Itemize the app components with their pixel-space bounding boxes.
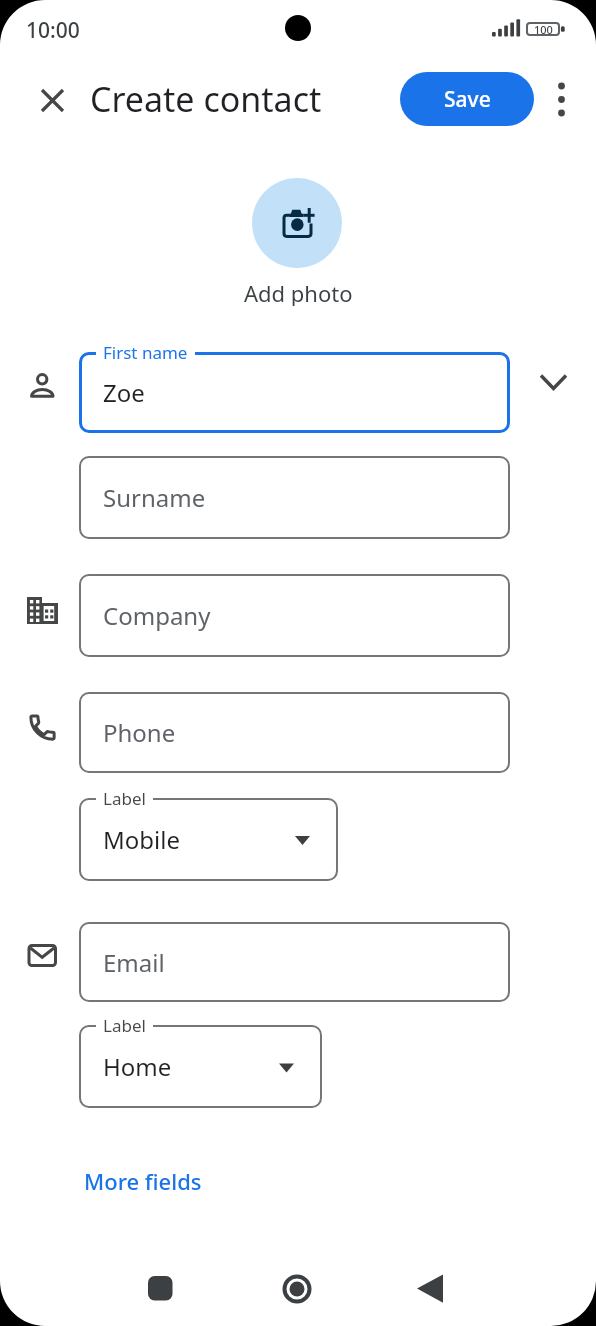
button[interactable]: Save [400, 72, 534, 126]
button[interactable]: Home [79, 1025, 322, 1108]
staticText: Add photo [244, 278, 353, 306]
staticText: 10:00 [26, 16, 80, 44]
button[interactable]: More fields [70, 1160, 216, 1202]
button[interactable]: Surname [79, 456, 510, 539]
staticText: 100 [534, 22, 553, 36]
button[interactable]: Phone [79, 692, 510, 773]
button[interactable] [273, 1264, 321, 1312]
button[interactable]: Zoe [79, 352, 510, 433]
staticText: First name [103, 341, 188, 363]
staticText: Mobile [103, 823, 180, 856]
staticText: Save [444, 85, 491, 114]
button[interactable] [136, 1264, 184, 1312]
button[interactable] [541, 75, 581, 123]
staticText: Surname [103, 481, 206, 514]
staticText: Create contact [90, 76, 322, 116]
button[interactable] [252, 178, 342, 268]
staticText: Company [103, 599, 211, 632]
staticText: Phone [103, 716, 176, 749]
button[interactable] [28, 76, 76, 124]
staticText: Email [103, 946, 165, 979]
button[interactable]: Company [79, 574, 510, 657]
staticText: More fields [84, 1166, 202, 1196]
staticText: Label [103, 787, 146, 809]
staticText: Home [103, 1050, 172, 1083]
button[interactable] [406, 1264, 454, 1312]
button[interactable]: Mobile [79, 798, 338, 881]
button[interactable]: Email [79, 922, 510, 1002]
staticText: Zoe [103, 376, 145, 409]
staticText: Label [103, 1014, 146, 1036]
